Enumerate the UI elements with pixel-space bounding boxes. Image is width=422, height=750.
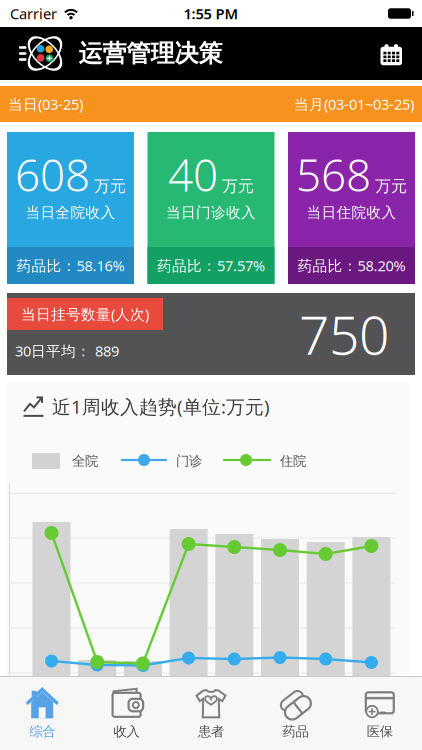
button[interactable]: 当月(03-01~03-25) (294, 86, 414, 122)
staticText: 全院 (72, 453, 98, 469)
staticText: 药品比：58.20% (297, 256, 405, 275)
button[interactable]: 医保 (338, 677, 422, 750)
staticText: 40 (168, 145, 218, 204)
staticText: 750 (299, 299, 389, 369)
staticText: 万元 (94, 176, 126, 196)
button[interactable]: 收入 (84, 677, 169, 750)
staticText: 药品比：58.16% (16, 256, 124, 275)
staticText: 当日挂号数量(人次) (21, 304, 149, 324)
staticText: 药品比：57.57% (157, 256, 265, 275)
button[interactable]: 药品 (253, 677, 338, 750)
staticText: 医保 (367, 723, 393, 740)
staticText: 当日(03-25) (8, 94, 83, 114)
staticText: 30日平均： 889 (15, 341, 119, 360)
staticText: 608 (15, 145, 90, 204)
button[interactable]: 综合 (0, 677, 84, 750)
button[interactable]: Calendar (372, 27, 422, 80)
staticText: 568 (296, 145, 371, 204)
staticText: 当日住院收入 (306, 204, 396, 222)
button[interactable]: Menu (0, 27, 62, 80)
staticText: 药品 (282, 723, 308, 740)
staticText: 万元 (222, 176, 254, 196)
staticText: 住院 (280, 453, 306, 469)
button[interactable]: 患者 (169, 677, 253, 750)
staticText: 患者 (198, 723, 224, 740)
staticText: 当日全院收入 (25, 204, 115, 222)
staticText: 近1周收入趋势(单位:万元) (52, 394, 270, 419)
staticText: 运营管理决策 (78, 39, 222, 68)
staticText: 门诊 (176, 453, 202, 469)
staticText: 当月(03-01~03-25) (294, 94, 414, 114)
button[interactable]: 当日(03-25) (8, 86, 83, 122)
staticText: 综合 (29, 723, 55, 740)
staticText: Carrier (10, 4, 57, 23)
staticText: 1:55 PM (183, 4, 238, 23)
staticText: 收入 (114, 723, 140, 740)
staticText: 万元 (375, 176, 407, 196)
staticText: 当日门诊收入 (166, 204, 256, 222)
